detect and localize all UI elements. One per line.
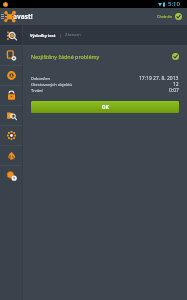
staticText: 12 [173,81,179,87]
button[interactable]: Firewall [0,145,22,165]
staticText: Nezjištěny žádné problémy [31,53,100,60]
staticText: OK [102,104,109,110]
staticText: Záznam [65,32,81,38]
button[interactable]: Privacy advisor [0,105,22,125]
staticText: Výsledky test [30,33,56,38]
staticText: 5:10 [168,0,180,8]
staticText: 0:07 [169,87,179,93]
staticText: Otestovaných objektů [31,82,72,87]
button[interactable]: Scan [0,25,22,45]
button[interactable]: Application manager [0,45,22,65]
button[interactable]: Network meter [0,125,22,145]
button[interactable]: Výsledky test [30,29,56,42]
staticText: Chráněn [157,14,173,19]
button[interactable]: Shield [0,65,22,85]
staticText: Trvání [31,88,43,93]
staticText: 17:19 27. 8. 2013 [139,75,179,81]
button[interactable]: OK [31,101,179,113]
staticText: | [59,32,62,38]
staticText: avast! [13,12,33,21]
button[interactable]: Chráněn [157,13,187,20]
button[interactable]: Backup [0,165,22,185]
staticText: Dokončen [31,76,51,81]
button[interactable]: App lock [0,85,22,105]
button[interactable]: Záznam [65,28,81,42]
button[interactable]: Menu [0,8,5,25]
